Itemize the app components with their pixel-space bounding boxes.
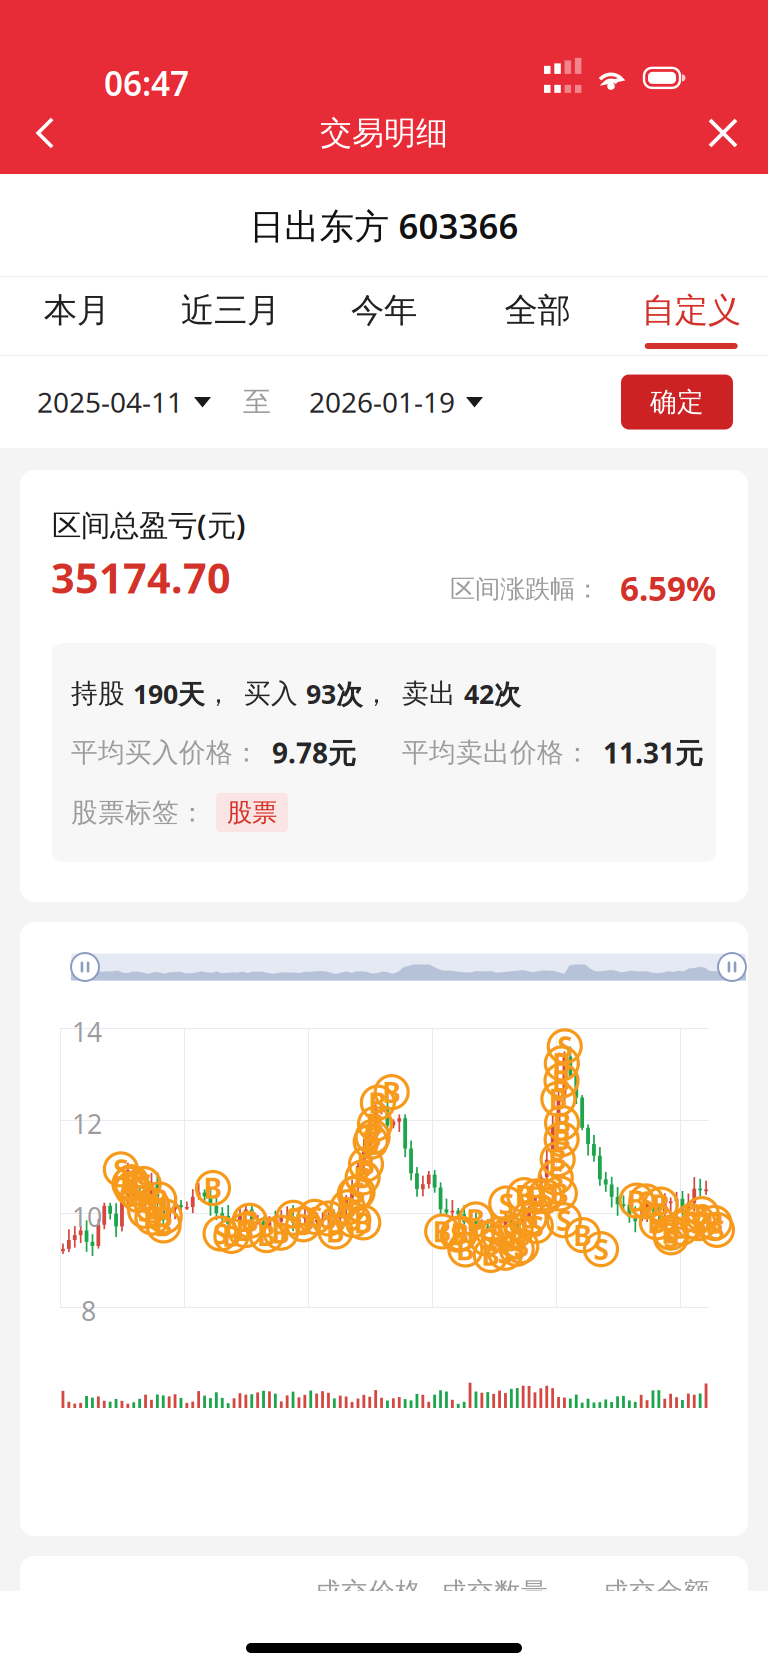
button[interactable]: 2026-01-19 xyxy=(309,383,483,421)
staticText: S xyxy=(321,1200,336,1237)
staticText: 42次 xyxy=(464,676,521,711)
staticText: 近三月 xyxy=(181,290,280,331)
staticText: B xyxy=(552,1045,571,1082)
staticText: B xyxy=(549,1080,568,1118)
staticText: 全部 xyxy=(505,290,571,331)
staticText: B xyxy=(294,1206,313,1243)
staticText: S xyxy=(136,1165,151,1203)
staticText: B xyxy=(553,1104,572,1142)
button[interactable]: 近三月 xyxy=(154,277,307,356)
staticText: B xyxy=(481,1236,500,1274)
staticText: S xyxy=(131,1176,146,1214)
staticText: ， xyxy=(363,677,390,710)
staticText: S xyxy=(213,1215,228,1252)
staticText: 平均卖出价格： xyxy=(402,736,591,769)
staticText: S xyxy=(557,1028,572,1065)
staticText: S xyxy=(346,1201,361,1239)
staticText: B xyxy=(548,1141,567,1178)
staticText: 本月 xyxy=(44,290,110,331)
staticText: 卖出 xyxy=(402,677,464,710)
staticText: S xyxy=(479,1220,494,1257)
staticText: S xyxy=(491,1216,506,1253)
staticText: B xyxy=(271,1214,290,1251)
staticText: S xyxy=(691,1204,706,1242)
staticText: 11.31元 xyxy=(603,734,703,771)
staticText: 2026-01-19 xyxy=(309,383,455,421)
staticText: B xyxy=(705,1204,724,1242)
button[interactable]: 关闭 xyxy=(689,100,757,166)
staticText: S xyxy=(307,1198,322,1235)
staticText: B xyxy=(150,1181,169,1218)
staticText: B xyxy=(450,1215,469,1252)
staticText: 93次 xyxy=(306,676,363,711)
staticText: 190天 xyxy=(133,676,205,711)
staticText: 12 xyxy=(72,1106,102,1141)
staticText: B xyxy=(647,1204,666,1241)
staticText: S xyxy=(694,1195,709,1233)
button[interactable]: 2025-04-11 xyxy=(37,383,211,421)
staticText: S xyxy=(508,1212,523,1249)
staticText: 股票标签： xyxy=(71,796,206,829)
staticText: B xyxy=(361,1123,380,1160)
staticText: 成交数量 xyxy=(440,1576,548,1609)
staticText: B xyxy=(353,1159,372,1196)
button[interactable]: 返回 xyxy=(11,100,79,166)
staticText: B xyxy=(433,1213,452,1250)
staticText: B xyxy=(661,1214,680,1251)
staticText: 8 xyxy=(81,1293,96,1328)
staticText: 6.59% xyxy=(620,566,716,610)
staticText: 日出东方 603366 xyxy=(249,202,518,248)
staticText: B xyxy=(456,1231,475,1268)
staticText: 交易明细 xyxy=(320,113,448,153)
staticText: B xyxy=(520,1199,539,1236)
staticText: S xyxy=(556,1202,571,1239)
staticText: S xyxy=(509,1230,524,1267)
staticText: B xyxy=(222,1217,241,1255)
button[interactable]: 确定 xyxy=(621,374,733,429)
staticText: S xyxy=(350,1174,365,1211)
staticText: S xyxy=(502,1215,517,1252)
staticText: 2025-04-11 xyxy=(37,383,183,421)
staticText: B xyxy=(552,1121,571,1158)
staticText: B xyxy=(382,1073,401,1111)
staticText: S xyxy=(684,1203,699,1240)
staticText: S xyxy=(499,1185,514,1222)
staticText: S xyxy=(347,1175,362,1212)
staticText: B xyxy=(240,1202,259,1239)
staticText: S xyxy=(157,1198,172,1235)
staticText: B xyxy=(257,1216,276,1254)
staticText: 10 xyxy=(72,1199,102,1234)
staticText: 今年 xyxy=(351,290,417,331)
staticText: B xyxy=(466,1201,485,1238)
staticText: S xyxy=(663,1219,678,1256)
staticText: 成交价格 xyxy=(314,1576,422,1609)
staticText: S xyxy=(593,1231,608,1268)
staticText: S xyxy=(113,1151,128,1188)
staticText: S xyxy=(709,1211,724,1248)
staticText: B xyxy=(363,1118,382,1156)
staticText: B xyxy=(120,1165,139,1203)
button[interactable]: 今年 xyxy=(307,277,461,356)
button[interactable]: 自定义 xyxy=(614,277,768,356)
staticText: S xyxy=(450,1216,465,1253)
staticText: S xyxy=(639,1183,654,1220)
staticText: S xyxy=(138,1192,153,1230)
staticText: 9.78元 xyxy=(272,734,356,771)
button[interactable]: 本月 xyxy=(0,277,154,356)
staticText: 确定 xyxy=(650,386,704,418)
staticText: 持股 xyxy=(71,677,133,710)
staticText: S xyxy=(286,1199,301,1236)
staticText: 14 xyxy=(72,1014,102,1049)
staticText: B xyxy=(122,1164,141,1201)
staticText: B xyxy=(143,1199,162,1236)
staticText: 至 xyxy=(243,385,271,419)
staticText: 股票 xyxy=(227,797,277,828)
staticText: ， xyxy=(205,677,232,710)
staticText: B xyxy=(154,1207,173,1244)
staticText: S xyxy=(125,1170,140,1207)
button[interactable]: 全部 xyxy=(461,277,614,356)
staticText: S xyxy=(548,1159,563,1196)
staticText: B xyxy=(515,1177,534,1214)
staticText: 35174.70 xyxy=(51,550,231,605)
staticText: S xyxy=(498,1234,513,1271)
